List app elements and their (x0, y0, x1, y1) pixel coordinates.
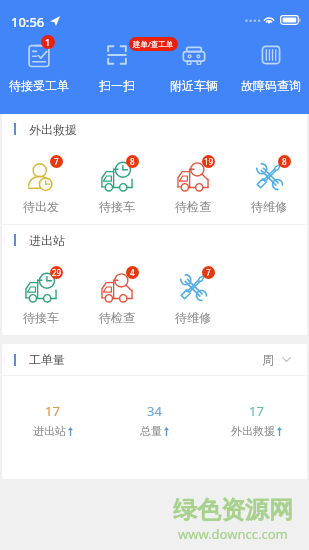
button[interactable]: 扫一扫 (78, 40, 155, 93)
staticText: 10:56 (11, 13, 45, 31)
staticText: 1 (45, 36, 51, 48)
button[interactable]: 17 (205, 402, 307, 438)
staticText: 4 (130, 267, 135, 278)
staticText: 工单量 (29, 352, 65, 367)
button[interactable]: 34 (103, 402, 205, 438)
staticText: 建单/查工单 (133, 39, 174, 49)
staticText: 绿色资源网 (173, 495, 293, 525)
staticText: 8 (130, 156, 135, 167)
button[interactable]: 7 (155, 255, 231, 335)
button[interactable]: 29 (2, 255, 79, 335)
staticText: 8 (282, 156, 287, 167)
button[interactable]: 19 (155, 144, 231, 224)
staticText: 待维修 (175, 310, 211, 325)
staticText: 7 (206, 267, 211, 278)
staticText: 17 (249, 402, 264, 420)
staticText: www.downcc.com (178, 525, 288, 543)
staticText: 附近车辆 (170, 78, 218, 93)
button[interactable]: 附近车辆 (155, 40, 232, 93)
staticText: 17 (45, 402, 60, 420)
staticText: 周 (262, 352, 274, 367)
button[interactable]: 8 (79, 144, 155, 224)
staticText: 外出救援 (231, 424, 275, 438)
staticText: 外出救援 (29, 122, 77, 137)
staticText: 待接车 (99, 199, 135, 214)
staticText: 进出站 (33, 424, 66, 438)
button[interactable]: 4 (79, 255, 155, 335)
staticText: 待出发 (23, 199, 59, 214)
staticText: 7 (54, 156, 59, 167)
button[interactable]: 7 (2, 144, 79, 224)
staticText: 待检查 (175, 199, 211, 214)
button[interactable]: 周 (262, 352, 291, 367)
staticText: 34 (147, 402, 162, 420)
staticText: 待接受工单 (9, 78, 69, 93)
staticText: 进出站 (29, 233, 65, 248)
staticText: 待维修 (251, 199, 287, 214)
button[interactable]: 待接受工单 (0, 40, 78, 93)
button[interactable]: 8 (231, 144, 307, 224)
staticText: 待接车 (23, 310, 59, 325)
staticText: 总量 (140, 424, 162, 438)
button[interactable]: 故障码查询 (232, 40, 309, 93)
staticText: 故障码查询 (241, 78, 301, 93)
button[interactable]: 17 (2, 402, 103, 438)
staticText: 29 (52, 267, 62, 278)
staticText: 待检查 (99, 310, 135, 325)
staticText: 19 (204, 156, 214, 167)
staticText: 扫一扫 (99, 78, 135, 93)
